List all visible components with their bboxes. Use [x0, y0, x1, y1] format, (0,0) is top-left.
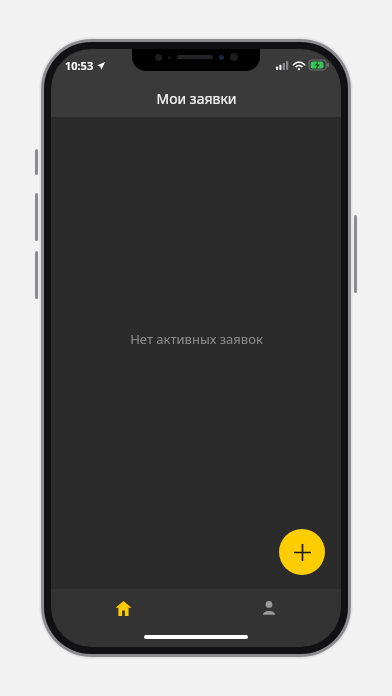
button[interactable]: Профиль — [196, 589, 341, 627]
staticText: 10:53 — [65, 58, 94, 73]
staticText: Нет активных заявок — [130, 330, 263, 348]
staticText: Мои заявки — [156, 89, 237, 108]
button[interactable]: Главная — [51, 589, 196, 627]
button[interactable]: Создать заявку — [279, 529, 325, 575]
